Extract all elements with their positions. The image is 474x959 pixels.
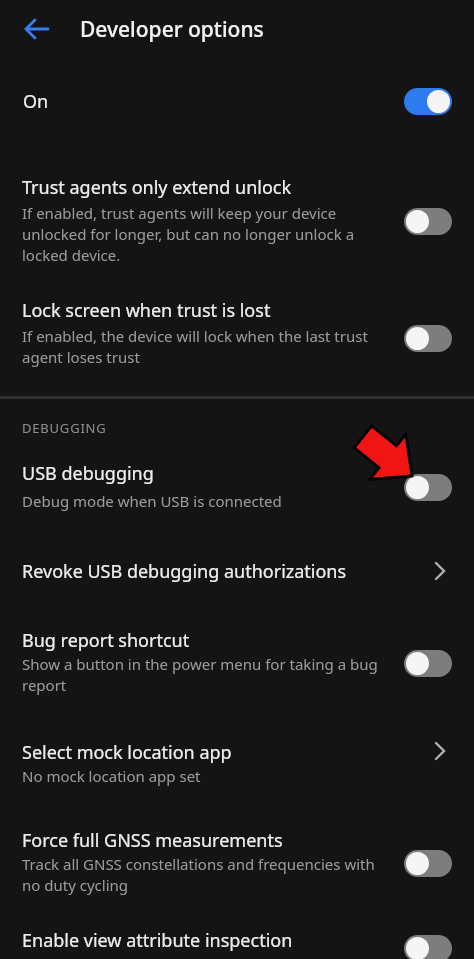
staticText: If enabled, the device will lock when th… (22, 326, 368, 368)
staticText: Enable view attribute inspection (22, 928, 293, 953)
button[interactable]: Bug report shortcut (0, 618, 474, 702)
staticText: Track all GNSS constellations and freque… (22, 854, 375, 896)
staticText: Developer options (80, 15, 264, 44)
staticText: Show a button in the power menu for taki… (22, 654, 378, 696)
button[interactable]: On (0, 71, 474, 131)
staticText: If enabled, trust agents will keep your … (22, 203, 355, 266)
staticText: No mock location app set (22, 766, 201, 786)
staticText: Lock screen when trust is lost (22, 298, 271, 323)
button[interactable]: Select mock location app (0, 730, 474, 792)
staticText: Select mock location app (22, 740, 232, 765)
staticText: Debug mode when USB is connected (22, 491, 282, 511)
staticText: Bug report shortcut (22, 628, 190, 653)
button[interactable]: Lock screen when trust is lost (0, 290, 474, 380)
button[interactable]: Revoke USB debugging authorizations (0, 548, 474, 594)
button[interactable] (13, 7, 61, 51)
button[interactable]: Force full GNSS measurements (0, 818, 474, 902)
staticText: USB debugging (22, 461, 154, 486)
staticText: On (23, 89, 49, 114)
staticText: Revoke USB debugging authorizations (22, 559, 347, 584)
button[interactable]: USB debugging (0, 454, 474, 524)
staticText: Force full GNSS measurements (22, 828, 283, 853)
button[interactable]: Enable view attribute inspection (0, 920, 474, 959)
staticText: Trust agents only extend unlock (22, 175, 292, 200)
staticText: DEBUGGING (22, 419, 107, 437)
button[interactable]: Trust agents only extend unlock (0, 168, 474, 272)
